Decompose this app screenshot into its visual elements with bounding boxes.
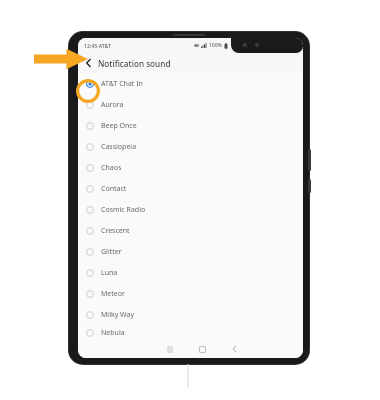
button[interactable]: Back [223,340,245,358]
button[interactable]: Luna [78,262,303,283]
staticText: Contact [101,184,127,194]
staticText: Milky Way [101,310,134,320]
button[interactable]: Cassiopeia [78,136,303,157]
button[interactable]: Contact [78,178,303,199]
staticText: Crescent [101,226,130,236]
staticText: AT&T Chat In [101,79,143,89]
button[interactable]: Chaos [78,157,303,178]
button[interactable]: Glitter [78,241,303,262]
staticText: Luna [101,268,118,278]
button[interactable]: Meteor [78,283,303,304]
button[interactable]: Back [78,53,98,73]
button[interactable]: Beep Once [78,115,303,136]
button[interactable]: AT&T Chat In [78,73,303,94]
button[interactable]: Recent apps [159,340,181,358]
staticText: Notification sound [98,58,171,69]
staticText: Chaos [101,163,122,173]
staticText: Cassiopeia [101,142,137,152]
staticText: Nebula [101,328,125,338]
staticText: 100% [209,42,222,49]
staticText: Aurora [101,100,124,110]
staticText: Glitter [101,247,122,257]
button[interactable]: Cosmic Radio [78,199,303,220]
staticText: 12:45 AT&T [84,42,111,49]
button[interactable]: Crescent [78,220,303,241]
button[interactable]: Milky Way [78,304,303,325]
staticText: Beep Once [101,121,137,131]
button[interactable]: Home [191,340,213,358]
button[interactable]: Nebula [78,325,303,340]
staticText: Meteor [101,289,125,299]
button[interactable]: Aurora [78,94,303,115]
staticText: Cosmic Radio [101,205,146,215]
